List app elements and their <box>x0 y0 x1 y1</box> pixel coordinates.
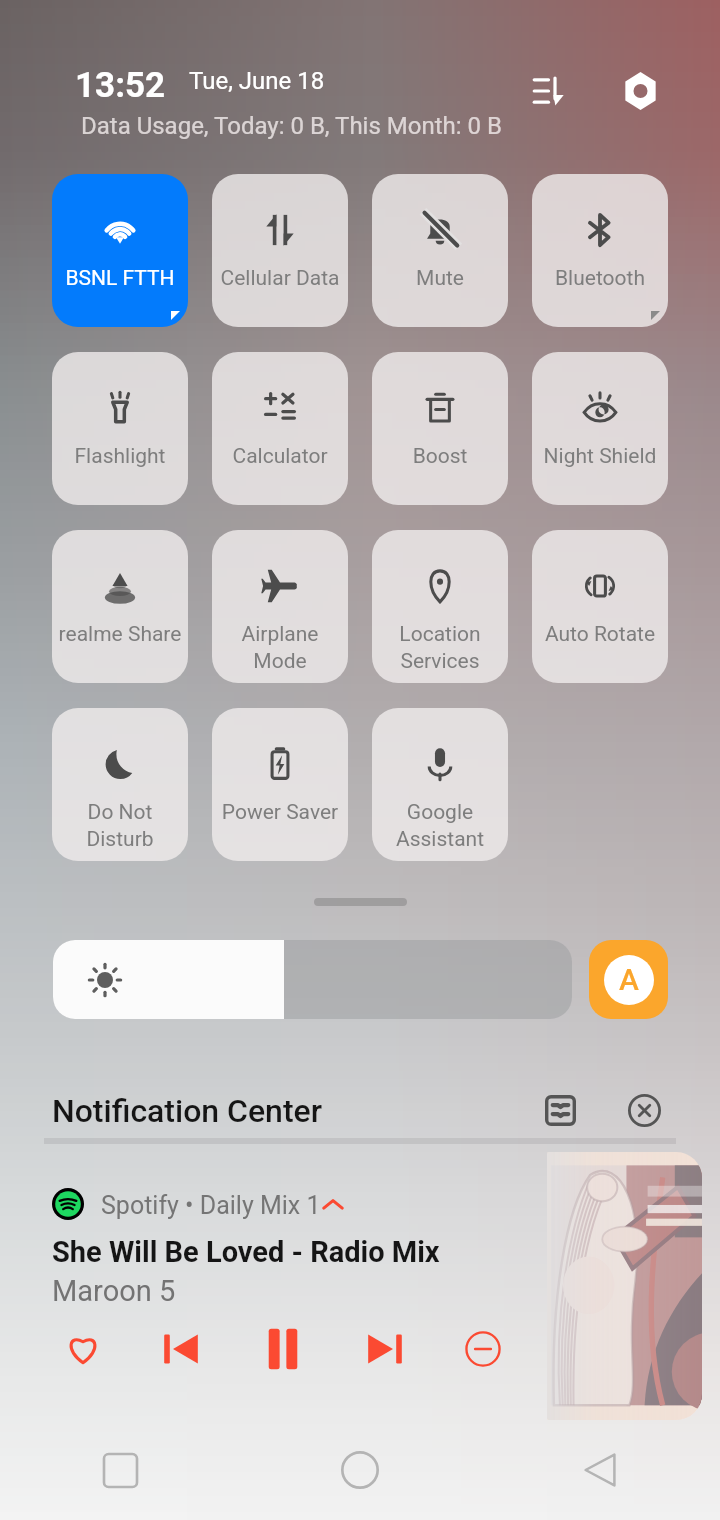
button[interactable]: realme Share <box>52 530 188 683</box>
staticText: Spotify • Daily Mix 1 <box>101 1191 321 1220</box>
button[interactable]: Notification settings <box>531 1081 589 1139</box>
button[interactable]: Home <box>240 1420 480 1520</box>
button[interactable]: Calculator <box>212 352 348 505</box>
button[interactable]: Cellular Data <box>212 174 348 327</box>
button[interactable]: Night Shield <box>532 352 668 505</box>
staticText: Google Assistant <box>375 800 505 852</box>
staticText: 13:52 <box>75 65 166 106</box>
button[interactable]: Back <box>480 1420 720 1520</box>
staticText: Power Saver <box>215 800 345 825</box>
button[interactable]: Brightness <box>53 940 572 1019</box>
button[interactable]: Boost <box>372 352 508 505</box>
staticText: Cellular Data <box>215 266 345 291</box>
staticText: Airplane Mode <box>215 622 345 674</box>
button[interactable]: Dismiss <box>452 1318 514 1380</box>
button[interactable]: Power Saver <box>212 708 348 861</box>
button[interactable]: BSNL FTTH <box>52 174 188 327</box>
staticText: realme Share <box>55 622 185 647</box>
button[interactable]: Auto Rotate <box>532 530 668 683</box>
staticText: Bluetooth <box>535 266 665 291</box>
staticText: BSNL FTTH <box>55 266 185 291</box>
button[interactable]: Flashlight <box>52 352 188 505</box>
staticText: Notification Center <box>52 1092 323 1130</box>
staticText: Auto Rotate <box>535 622 665 647</box>
button[interactable]: Favourite <box>52 1318 114 1380</box>
staticText: Do Not Disturb <box>55 800 185 852</box>
staticText: Data Usage, Today: 0 B, This Month: 0 B <box>81 112 502 140</box>
button[interactable]: Next track <box>354 1318 416 1380</box>
staticText: A <box>619 962 639 997</box>
button[interactable]: Edit quick settings <box>517 63 579 119</box>
staticText: Flashlight <box>55 444 185 469</box>
staticText: Tue, June 18 <box>189 67 325 95</box>
button[interactable]: Auto brightness <box>589 940 668 1019</box>
button[interactable]: Mute <box>372 174 508 327</box>
button[interactable]: Previous track <box>150 1318 212 1380</box>
staticText: Location Services <box>375 622 505 674</box>
button[interactable]: Do Not Disturb <box>52 708 188 861</box>
button[interactable]: Pause <box>252 1318 314 1380</box>
button[interactable]: Recent apps <box>0 1420 240 1520</box>
button[interactable]: Clear all notifications <box>615 1081 673 1139</box>
staticText: Night Shield <box>535 444 665 469</box>
staticText: Calculator <box>215 444 345 469</box>
staticText: Mute <box>375 266 505 291</box>
button[interactable]: Airplane Mode <box>212 530 348 683</box>
staticText: Boost <box>375 444 505 469</box>
button[interactable]: Location Services <box>372 530 508 683</box>
button[interactable]: Google Assistant <box>372 708 508 861</box>
button[interactable]: Bluetooth <box>532 174 668 327</box>
button[interactable]: Settings <box>609 63 671 119</box>
staticText: She Will Be Loved - Radio Mix <box>52 1235 440 1269</box>
staticText: Maroon 5 <box>52 1274 176 1308</box>
